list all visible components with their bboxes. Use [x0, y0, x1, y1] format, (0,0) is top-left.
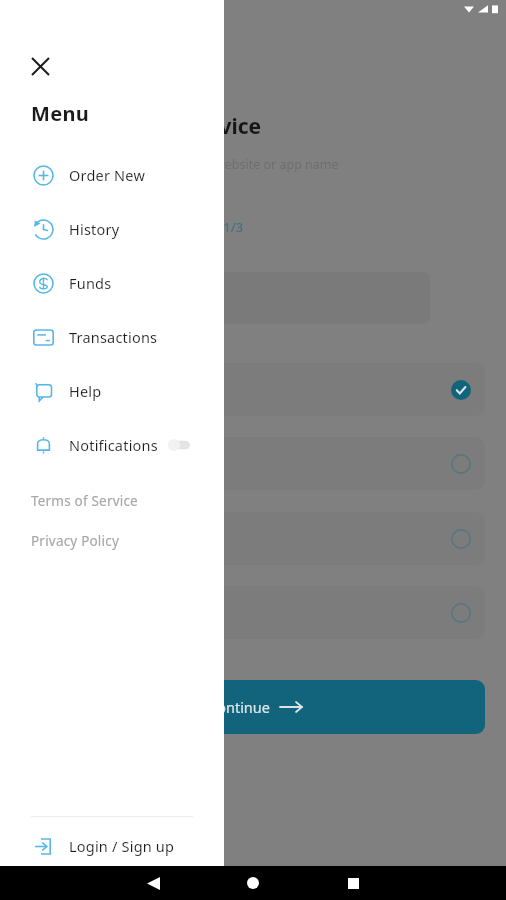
- button[interactable]: Transactions: [0, 310, 224, 364]
- staticText: Order New: [69, 165, 145, 185]
- button[interactable]: History: [0, 202, 224, 256]
- staticText: Funds: [69, 273, 112, 293]
- button[interactable]: Privacy Policy: [0, 521, 224, 561]
- button[interactable]: [130, 437, 485, 490]
- button[interactable]: Help: [0, 364, 224, 418]
- staticText: Notifications: [69, 435, 158, 455]
- staticText: Steps 1/3: [186, 218, 244, 236]
- button[interactable]: Home: [203, 866, 303, 900]
- button[interactable]: Terms of Service: [0, 481, 224, 521]
- staticText: Help: [69, 381, 102, 401]
- button[interactable]: Login / Sign up: [0, 817, 224, 875]
- staticText: Service: [186, 112, 262, 141]
- button[interactable]: Notifications toggle: [168, 439, 190, 451]
- button[interactable]: Back: [103, 866, 203, 900]
- button[interactable]: [130, 512, 485, 565]
- button[interactable]: Funds: [0, 256, 224, 310]
- button[interactable]: Continue: [130, 680, 485, 734]
- staticText: Login / Sign up: [69, 836, 175, 856]
- button[interactable]: Order New: [0, 148, 224, 202]
- button[interactable]: Close menu: [20, 46, 60, 86]
- button[interactable]: [130, 586, 485, 639]
- button[interactable]: [130, 363, 485, 416]
- staticText: Privacy Policy: [31, 532, 119, 550]
- button[interactable]: Recents: [303, 866, 403, 900]
- staticText: Terms of Service: [31, 492, 138, 510]
- staticText: Menu: [31, 100, 89, 127]
- staticText: Transactions: [69, 327, 158, 347]
- button[interactable]: Notifications: [0, 418, 224, 472]
- staticText: Continue: [208, 697, 270, 717]
- staticText: History: [69, 219, 120, 239]
- staticText: Enter a website or app name: [170, 156, 339, 173]
